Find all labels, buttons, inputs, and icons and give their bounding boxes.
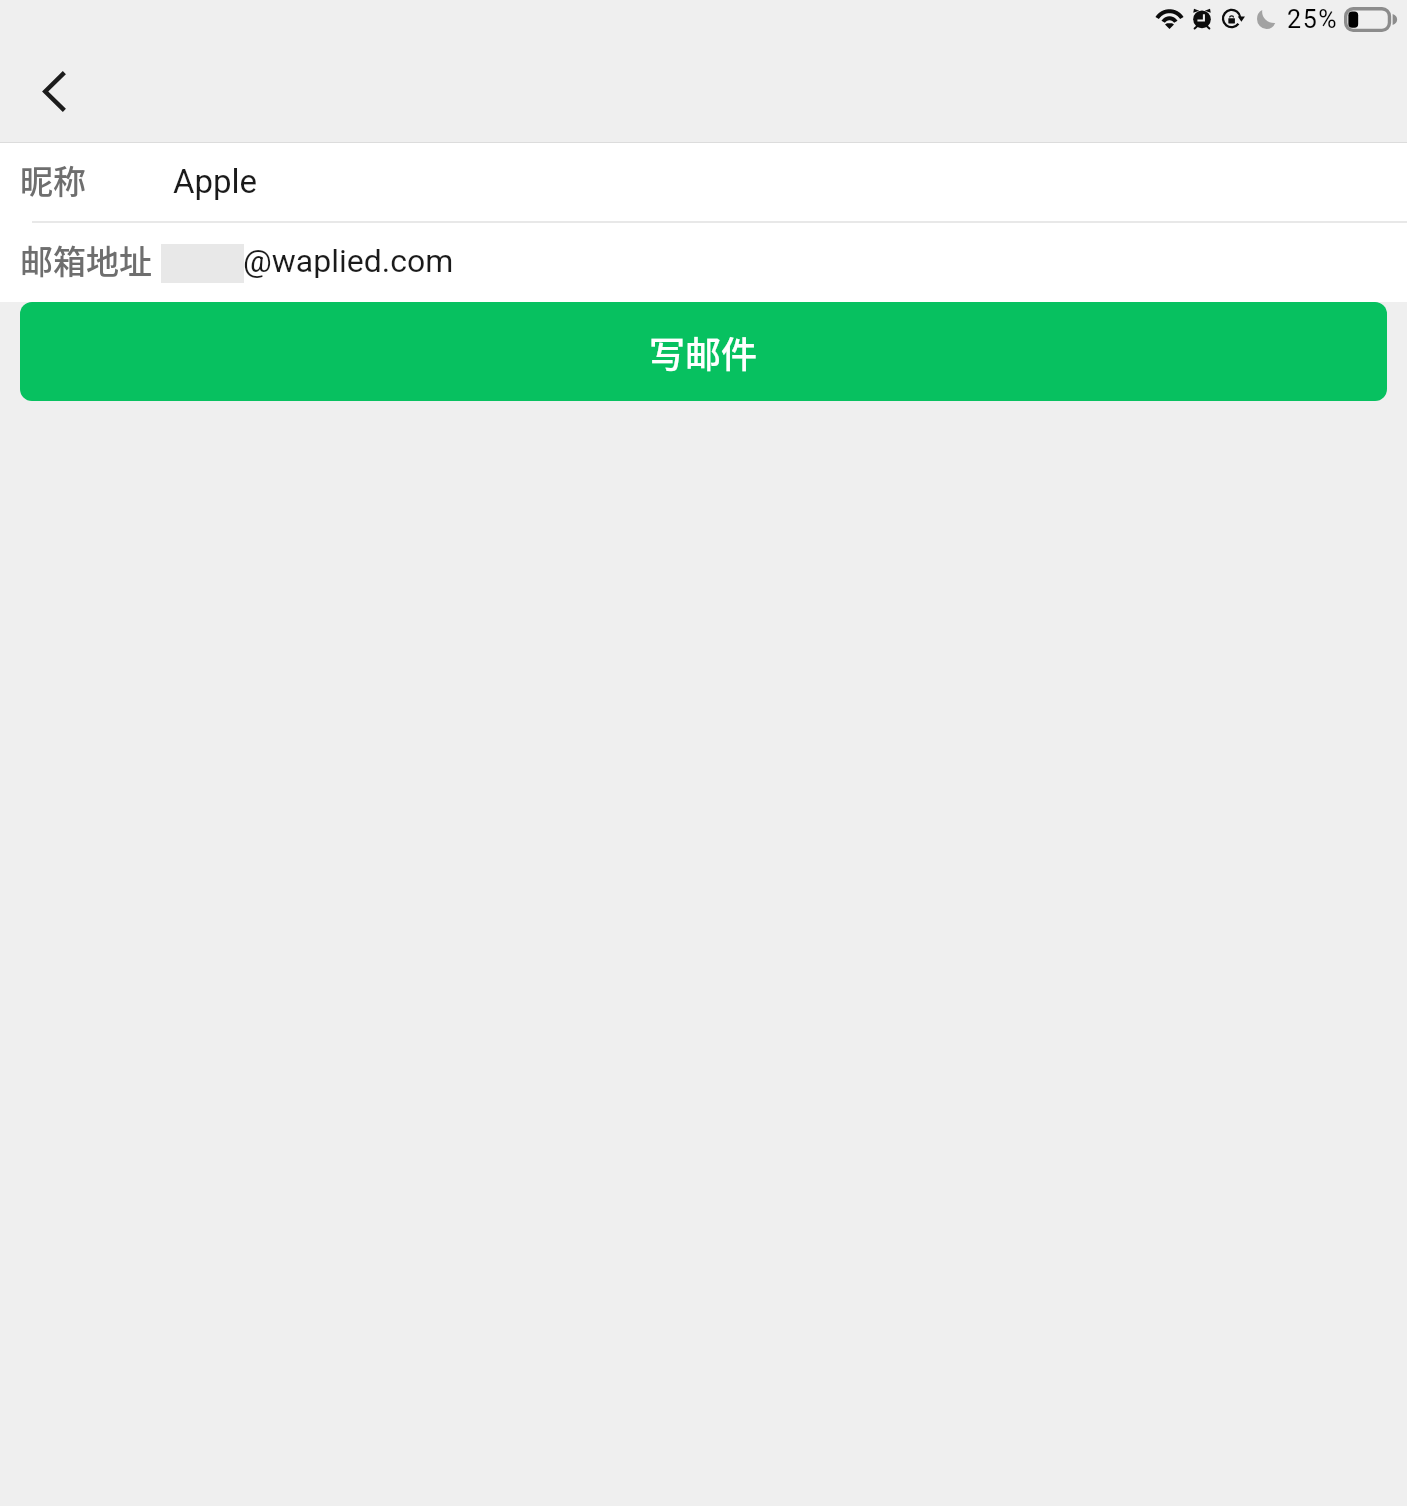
staticText: @waplied.com [243,242,454,280]
staticText: 邮箱地址 [20,236,152,284]
staticText: 写邮件 [649,326,758,378]
button[interactable]: 邮箱地址 [0,223,1407,302]
staticText: 昵称 [20,156,86,204]
staticText: 25% [1287,5,1339,34]
button[interactable]: Back [30,67,78,115]
staticText: Apple [173,162,258,201]
button[interactable]: 写邮件 [20,302,1387,401]
button[interactable]: 昵称 [0,143,1407,221]
